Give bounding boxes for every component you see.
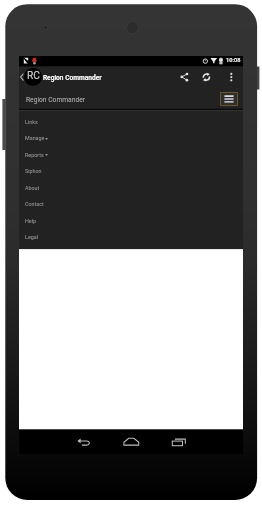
staticText: Contact xyxy=(25,201,44,207)
button[interactable]: More options xyxy=(221,66,241,89)
staticText: Links xyxy=(25,119,38,125)
button[interactable] xyxy=(19,163,243,180)
button[interactable]: Back xyxy=(62,429,106,453)
staticText: Siphon xyxy=(25,168,42,174)
button[interactable]: Home xyxy=(109,429,153,453)
button[interactable]: Toggle navigation xyxy=(220,92,238,106)
staticText: 10:08 xyxy=(226,57,241,64)
staticText: About xyxy=(25,185,40,191)
button[interactable]: Navigate up xyxy=(19,66,43,89)
button[interactable] xyxy=(19,196,243,213)
staticText: Legal xyxy=(25,234,39,240)
button[interactable] xyxy=(19,146,243,163)
staticText: Manage xyxy=(25,135,45,141)
staticText: Help xyxy=(25,218,37,224)
button[interactable]: RC xyxy=(27,70,40,82)
button[interactable] xyxy=(19,229,243,246)
button[interactable] xyxy=(19,212,243,229)
button[interactable]: Share xyxy=(175,66,195,89)
button[interactable]: Recents xyxy=(157,429,201,453)
button[interactable]: Region Commander xyxy=(26,96,86,104)
button[interactable] xyxy=(19,179,243,196)
button[interactable]: Refresh xyxy=(196,66,216,89)
staticText: Reports xyxy=(25,152,44,158)
button[interactable] xyxy=(19,113,243,130)
button[interactable] xyxy=(19,130,243,147)
button[interactable]: Region Commander xyxy=(43,74,102,82)
